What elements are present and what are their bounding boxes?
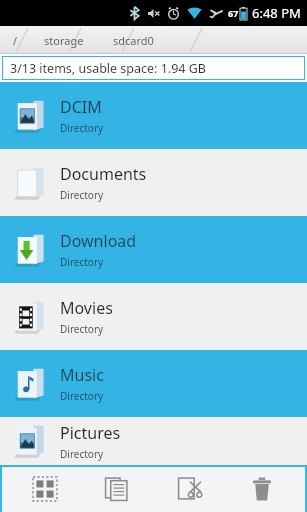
button[interactable]: Music xyxy=(0,350,307,417)
staticText: Movies xyxy=(60,297,113,319)
button[interactable]: / xyxy=(0,26,307,54)
button[interactable]: Pictures xyxy=(0,417,307,465)
button[interactable]: DCIM xyxy=(0,82,307,149)
staticText: DCIM xyxy=(60,96,102,118)
staticText: 67 xyxy=(228,7,239,19)
staticText: 6:48 PM xyxy=(252,4,301,22)
button[interactable]: Delete xyxy=(234,466,290,511)
staticText: Music xyxy=(60,364,104,386)
staticText: Download xyxy=(60,230,137,252)
staticText: / xyxy=(13,33,18,48)
button[interactable]: Copy xyxy=(89,466,145,511)
staticText: Directory xyxy=(60,389,104,403)
button[interactable]: Movies xyxy=(0,283,307,350)
staticText: sdcard0 xyxy=(113,33,154,48)
staticText: Documents xyxy=(60,163,147,185)
button[interactable]: Select all xyxy=(17,466,73,511)
button[interactable]: Cut xyxy=(162,466,218,511)
staticText: Directory xyxy=(60,322,104,336)
button[interactable]: Download xyxy=(0,216,307,283)
staticText: Directory xyxy=(60,255,104,269)
staticText: Pictures xyxy=(60,422,121,444)
button[interactable]: Documents xyxy=(0,149,307,216)
staticText: Directory xyxy=(60,188,104,202)
staticText: storage xyxy=(44,33,84,48)
staticText: Directory xyxy=(60,447,104,461)
staticText: 3/13 items, usable space: 1.94 GB xyxy=(10,60,206,77)
staticText: Directory xyxy=(60,121,104,135)
